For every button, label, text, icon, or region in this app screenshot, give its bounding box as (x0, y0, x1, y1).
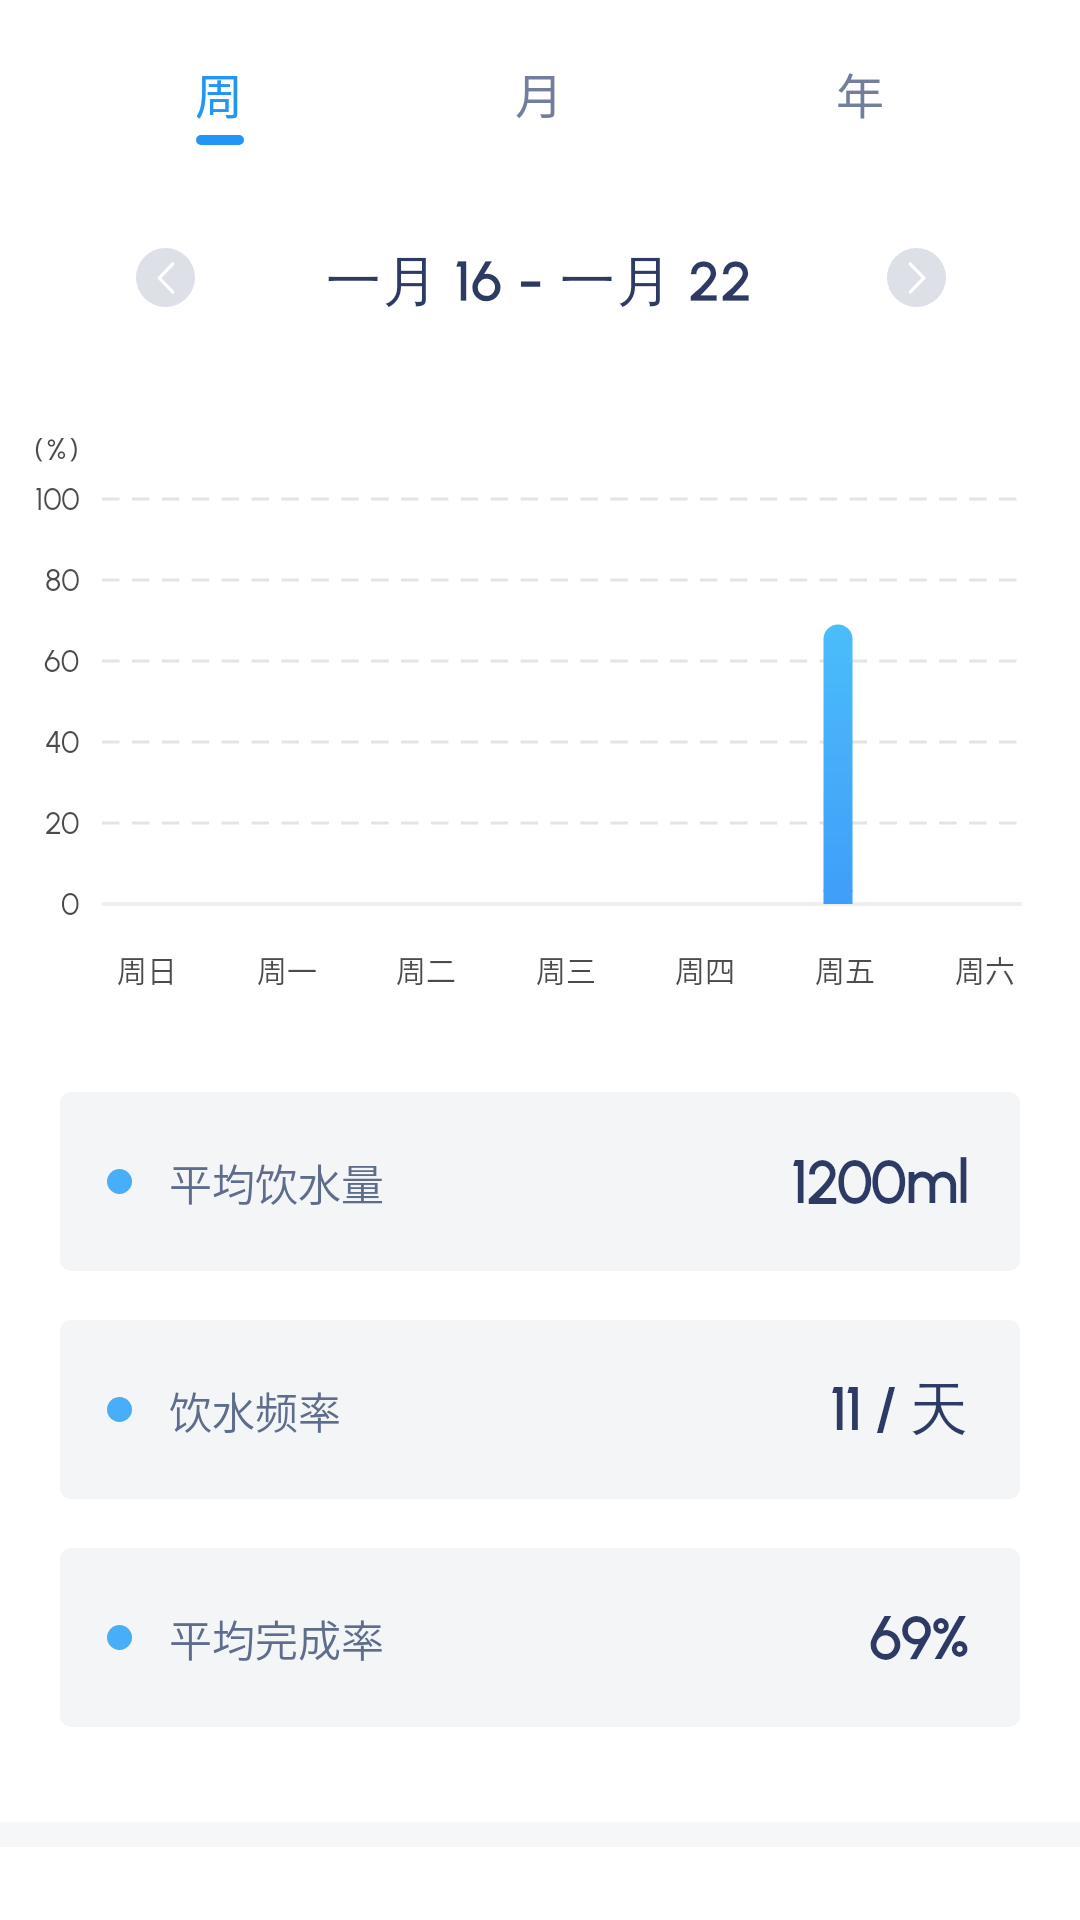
staticText: 周四 (675, 947, 735, 990)
staticText: 20 (45, 805, 80, 842)
button[interactable]: 周 (59, 0, 379, 170)
staticText: 周日 (117, 947, 177, 990)
staticText: 周六 (955, 947, 1015, 990)
button[interactable]: Next week (887, 248, 946, 307)
staticText: 平均饮水量 (169, 1151, 384, 1213)
button[interactable]: 饮水频率 (60, 1320, 1020, 1499)
staticText: 饮水频率 (169, 1379, 341, 1441)
staticText: 周 (195, 58, 244, 128)
staticText: 69% (870, 1603, 969, 1673)
staticText: 0 (61, 886, 80, 923)
staticText: 100 (35, 481, 80, 518)
staticText: 年 (836, 58, 885, 128)
staticText: (%) (34, 431, 82, 468)
staticText: 11 / 天 (831, 1373, 969, 1446)
staticText: 80 (45, 562, 80, 599)
staticText: 40 (45, 724, 80, 761)
staticText: 一月 16 - 一月 22 (326, 247, 754, 307)
button[interactable]: 平均饮水量 (60, 1092, 1020, 1271)
button[interactable]: 月 (379, 0, 700, 170)
button[interactable]: 平均完成率 (60, 1548, 1020, 1727)
staticText: 1200ml (792, 1147, 969, 1217)
button[interactable]: Previous week (136, 248, 195, 307)
staticText: 周五 (815, 947, 875, 990)
staticText: 60 (44, 643, 80, 680)
button[interactable]: 年 (700, 0, 1021, 170)
staticText: 平均完成率 (169, 1607, 384, 1669)
staticText: 周一 (257, 947, 317, 990)
staticText: 周二 (396, 947, 456, 990)
staticText: 月 (515, 58, 564, 128)
staticText: 周三 (536, 947, 596, 990)
